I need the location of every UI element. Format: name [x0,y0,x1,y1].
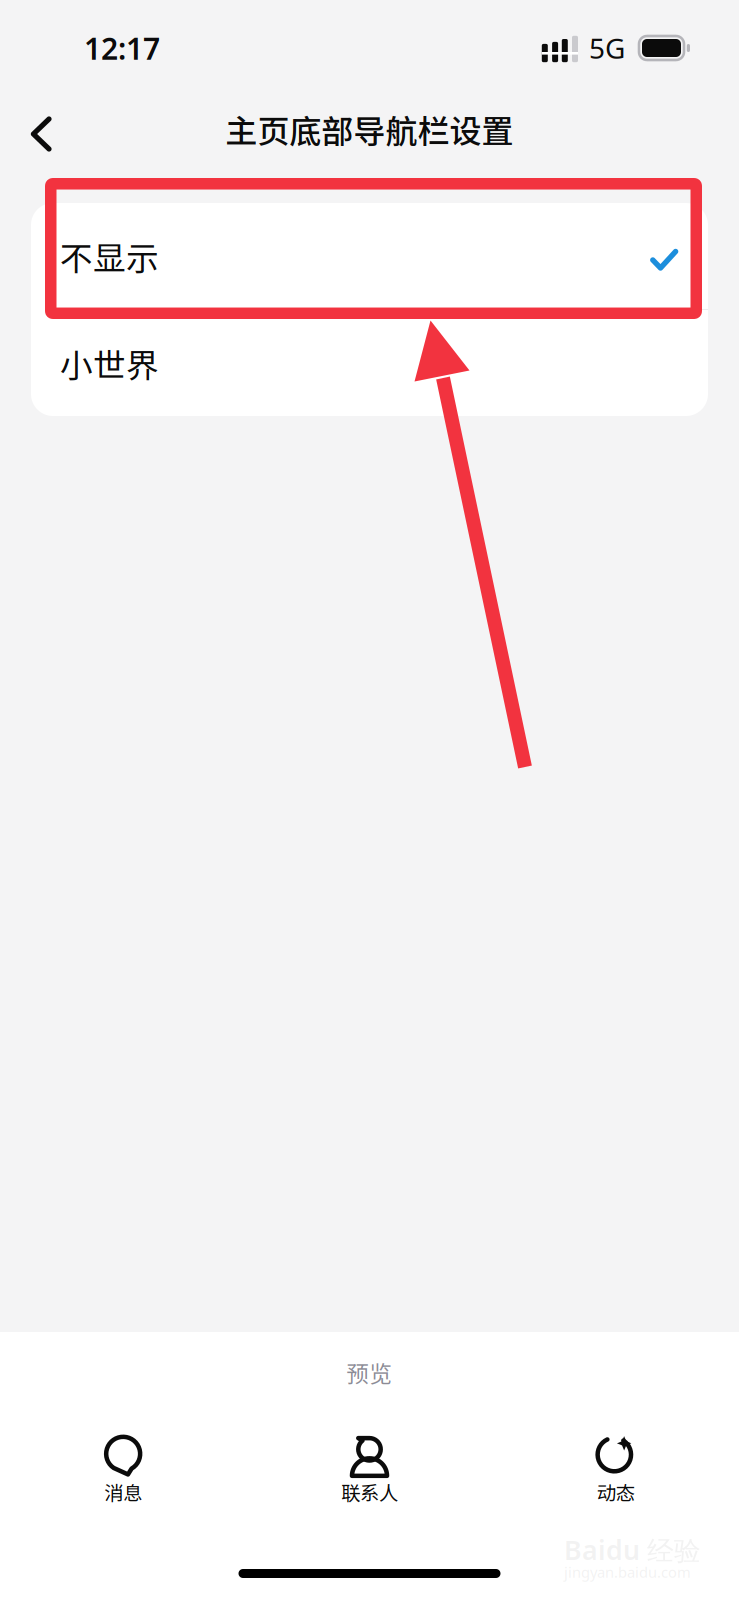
button[interactable]: 返回 [0,94,79,174]
staticText: Baidu 经验 [564,1532,701,1568]
staticText: 预览 [346,1356,392,1389]
button[interactable]: 小世界 [31,310,708,416]
staticText: 联系人 [341,1478,398,1506]
staticText: 动态 [597,1478,635,1506]
staticText: 小世界 [60,339,159,387]
button[interactable]: 联系人 [246,1433,493,1509]
staticText: 12:17 [84,28,160,68]
button[interactable]: 消息 [0,1433,246,1509]
button[interactable]: 动态 [493,1433,739,1509]
staticText: jingyan.baidu.com [564,1562,691,1582]
staticText: 不显示 [60,232,159,280]
staticText: 主页底部导航栏设置 [225,106,513,152]
staticText: 5G [589,29,625,67]
staticText: 消息 [104,1478,142,1506]
button[interactable]: 不显示 [31,203,708,309]
